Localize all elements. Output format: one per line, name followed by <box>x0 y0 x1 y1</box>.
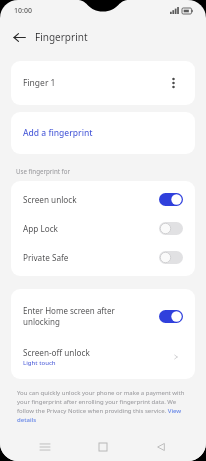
button[interactable]: Enter Home screen after unlocking <box>11 293 195 339</box>
staticText: Screen-off unlock <box>23 347 90 358</box>
button[interactable]: Toggle on <box>159 193 183 206</box>
button[interactable]: Home <box>90 434 116 460</box>
button[interactable]: Toggle off <box>159 222 183 235</box>
staticText: You can quickly unlock your phone or mak… <box>17 389 189 424</box>
staticText: Screen unlock <box>23 194 77 205</box>
button[interactable]: Toggle off <box>159 251 183 264</box>
staticText: App Lock <box>23 223 58 234</box>
button[interactable]: Toggle on <box>159 310 183 323</box>
button[interactable]: Back <box>8 26 30 48</box>
staticText: Fingerprint <box>35 30 88 44</box>
staticText: Enter Home screen after unlocking <box>23 305 115 327</box>
button[interactable]: Screen unlock <box>11 185 195 214</box>
button[interactable]: Back <box>148 434 174 460</box>
staticText: 10:00 <box>14 6 32 16</box>
button[interactable]: Private Safe <box>11 243 195 272</box>
button[interactable]: Recent apps <box>32 434 58 460</box>
button[interactable]: App Lock <box>11 214 195 243</box>
button[interactable]: Finger 1 <box>11 65 195 101</box>
staticText: Private Safe <box>23 252 69 263</box>
button[interactable]: More options <box>163 73 183 93</box>
staticText: Use fingerprint for <box>16 167 71 175</box>
button[interactable]: Screen-off unlock <box>11 339 195 375</box>
staticText: Light touch <box>23 359 56 367</box>
button[interactable]: Add a fingerprint <box>11 116 195 150</box>
staticText: Finger 1 <box>23 77 56 89</box>
staticText: Add a fingerprint <box>23 127 93 139</box>
